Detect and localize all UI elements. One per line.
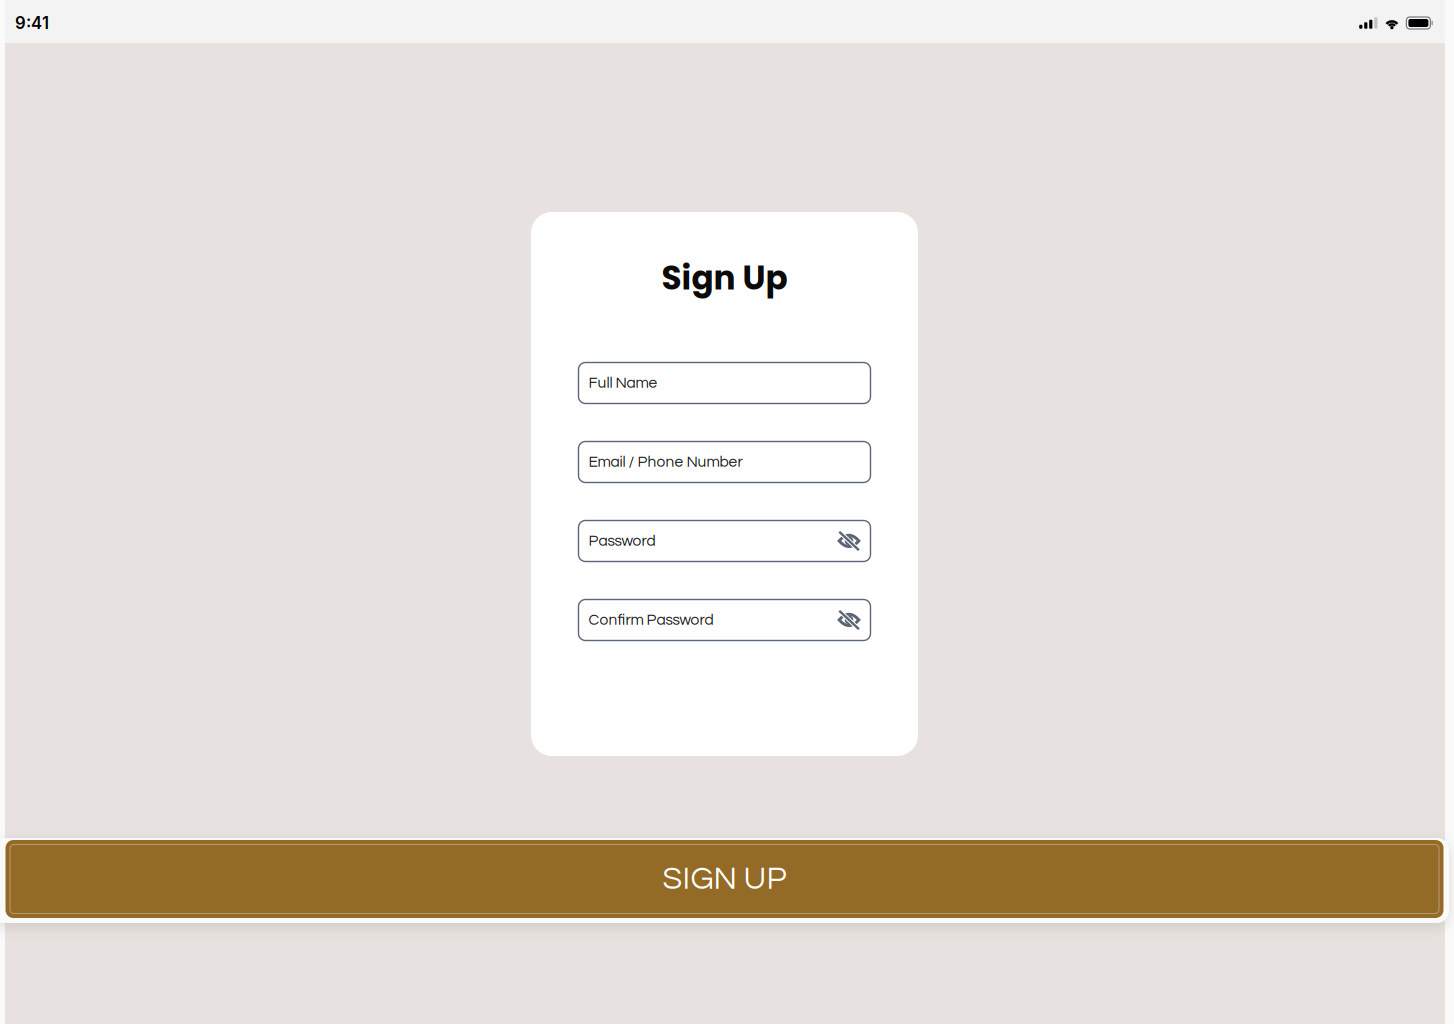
button[interactable]: Full Name bbox=[578, 362, 870, 403]
staticText: 9:41 bbox=[15, 13, 49, 33]
staticText: Password bbox=[588, 533, 655, 549]
staticText: Email / Phone Number bbox=[588, 454, 742, 470]
staticText: Full Name bbox=[588, 375, 657, 391]
button[interactable]: Confirm Password bbox=[578, 599, 870, 640]
button[interactable]: Email / Phone Number bbox=[578, 441, 870, 482]
staticText: Confirm Password bbox=[588, 612, 713, 628]
staticText: SIGN UP bbox=[662, 862, 786, 895]
button[interactable]: SIGN UP bbox=[5, 840, 1443, 918]
staticText: Sign Up bbox=[661, 255, 787, 301]
button[interactable]: Password bbox=[578, 520, 870, 561]
